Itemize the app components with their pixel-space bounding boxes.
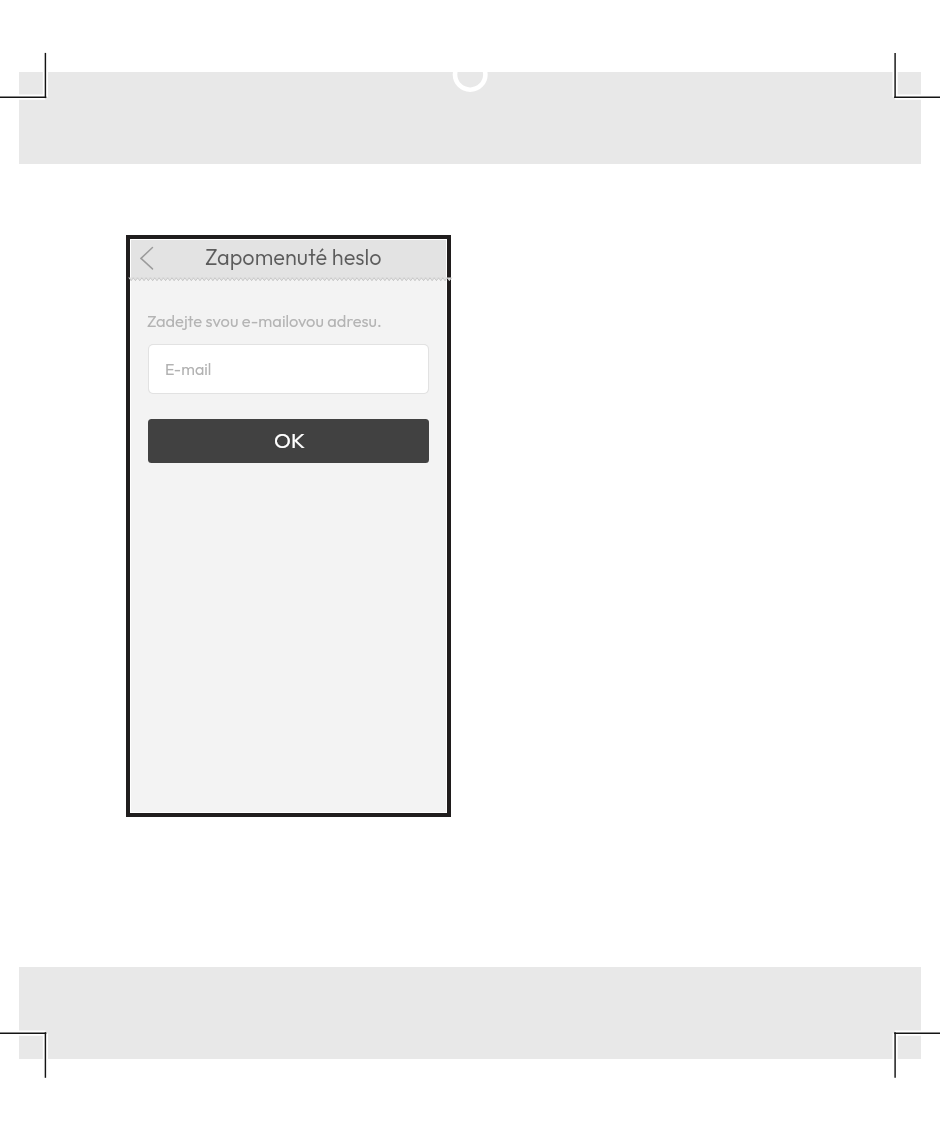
button[interactable]: E-mail [148, 344, 429, 394]
staticText: Zadejte svou e-mailovou adresu. [147, 311, 382, 332]
staticText: OK [274, 427, 305, 454]
staticText: E-mail [165, 359, 212, 379]
button[interactable]: Back [134, 242, 164, 272]
staticText: Zapomenuté heslo [205, 243, 382, 270]
button[interactable]: OK [148, 419, 429, 463]
